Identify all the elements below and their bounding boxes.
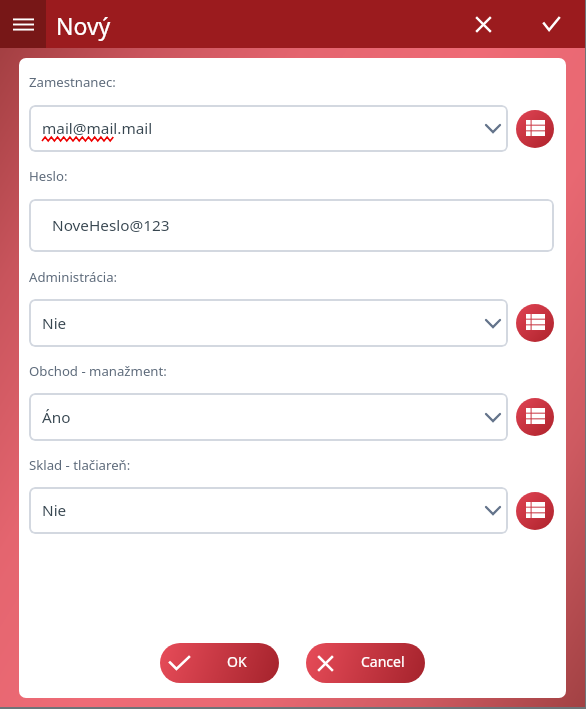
- staticText: Zamestnanec:: [29, 73, 116, 91]
- staticText: Cancel: [361, 652, 405, 671]
- button[interactable]: mail@mail.mail: [29, 105, 508, 152]
- staticText: Sklad - tlačiareň:: [29, 456, 131, 474]
- staticText: Nie: [42, 500, 67, 521]
- staticText: mail@mail.mail: [42, 118, 153, 139]
- staticText: Nový: [56, 10, 111, 41]
- staticText: Obchod - manažment:: [29, 362, 167, 380]
- staticText: NoveHeslo@123: [52, 215, 170, 236]
- button[interactable]: NoveHeslo@123: [29, 199, 554, 252]
- button[interactable]: Cancel: [306, 643, 425, 683]
- button[interactable]: Pick from list: [516, 492, 554, 530]
- button[interactable]: Pick from list: [516, 110, 554, 148]
- button[interactable]: Close: [459, 0, 507, 48]
- button[interactable]: Menu: [0, 0, 46, 48]
- staticText: OK: [227, 652, 247, 671]
- staticText: Nie: [42, 313, 67, 334]
- staticText: Administrácia:: [29, 268, 118, 286]
- button[interactable]: OK: [160, 643, 279, 683]
- staticText: Heslo:: [29, 167, 68, 185]
- button[interactable]: Pick from list: [516, 398, 554, 436]
- button[interactable]: Áno: [29, 393, 508, 441]
- button[interactable]: Pick from list: [516, 304, 554, 342]
- staticText: Áno: [42, 407, 71, 428]
- button[interactable]: Nie: [29, 299, 508, 347]
- button[interactable]: Nie: [29, 487, 508, 534]
- button[interactable]: Save: [527, 0, 575, 48]
